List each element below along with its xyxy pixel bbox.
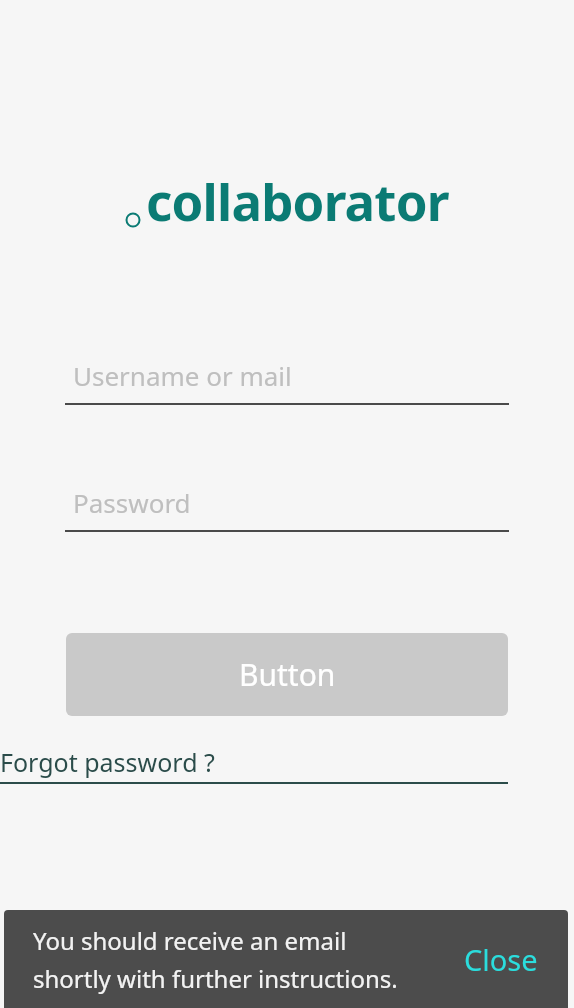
staticText: Username or mail xyxy=(73,358,292,393)
staticText: Button xyxy=(239,654,336,695)
staticText: Password xyxy=(73,485,191,520)
button[interactable]: Forgot password ? xyxy=(0,745,508,784)
staticText: Forgot password ? xyxy=(0,745,215,779)
button[interactable]: Close xyxy=(464,940,538,979)
staticText: collaborator xyxy=(146,166,449,235)
staticText: Close xyxy=(464,940,538,979)
button[interactable]: Password xyxy=(65,485,509,532)
staticText: You should receive an email xyxy=(33,924,347,957)
button[interactable]: Button xyxy=(66,633,508,716)
button[interactable]: Username or mail xyxy=(65,358,509,405)
staticText: shortly with further instructions. xyxy=(33,962,398,995)
